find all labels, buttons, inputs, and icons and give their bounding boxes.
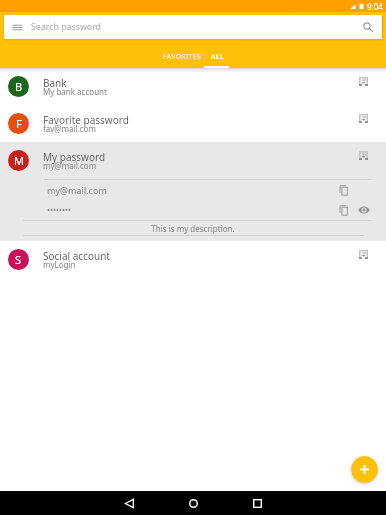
staticText: 9:04 xyxy=(367,1,383,12)
staticText: my@mail.com xyxy=(43,160,97,171)
button[interactable]: Show password xyxy=(356,202,372,218)
button[interactable] xyxy=(353,145,373,165)
staticText: myLogin xyxy=(43,259,76,270)
staticText: S xyxy=(15,252,22,267)
button[interactable]: Add xyxy=(351,456,378,483)
button[interactable]: Back xyxy=(108,491,150,515)
button[interactable]: Copy login xyxy=(336,182,352,198)
other: Search xyxy=(363,22,373,32)
staticText: Favorite password xyxy=(43,113,129,127)
staticText: fav@mail.com xyxy=(43,123,96,134)
staticText: My password xyxy=(43,150,106,164)
staticText: F xyxy=(16,116,22,131)
button[interactable] xyxy=(353,71,373,91)
button[interactable]: FAVORITES xyxy=(153,52,211,66)
button[interactable] xyxy=(353,244,373,264)
staticText: My bank account xyxy=(43,86,107,97)
button[interactable]: M xyxy=(0,142,386,179)
button[interactable]: F xyxy=(0,105,386,142)
staticText: Search password xyxy=(31,21,102,33)
button[interactable]: B xyxy=(0,68,386,105)
button[interactable]: Copy password xyxy=(336,202,352,218)
staticText: M xyxy=(14,153,24,168)
staticText: This is my description. xyxy=(0,223,386,234)
staticText: my@mail.com xyxy=(47,184,107,196)
button[interactable]: S xyxy=(0,241,386,278)
staticText: Social account xyxy=(43,249,110,263)
button[interactable]: Recents xyxy=(236,491,278,515)
button[interactable]: ALL xyxy=(205,52,230,66)
staticText: B xyxy=(15,79,23,94)
staticText: Bank xyxy=(43,76,67,90)
other: Menu xyxy=(12,22,23,33)
button[interactable]: Menu xyxy=(4,15,382,39)
button[interactable] xyxy=(353,108,373,128)
staticText: •••••••• xyxy=(47,204,72,215)
button[interactable]: Home xyxy=(172,491,214,515)
